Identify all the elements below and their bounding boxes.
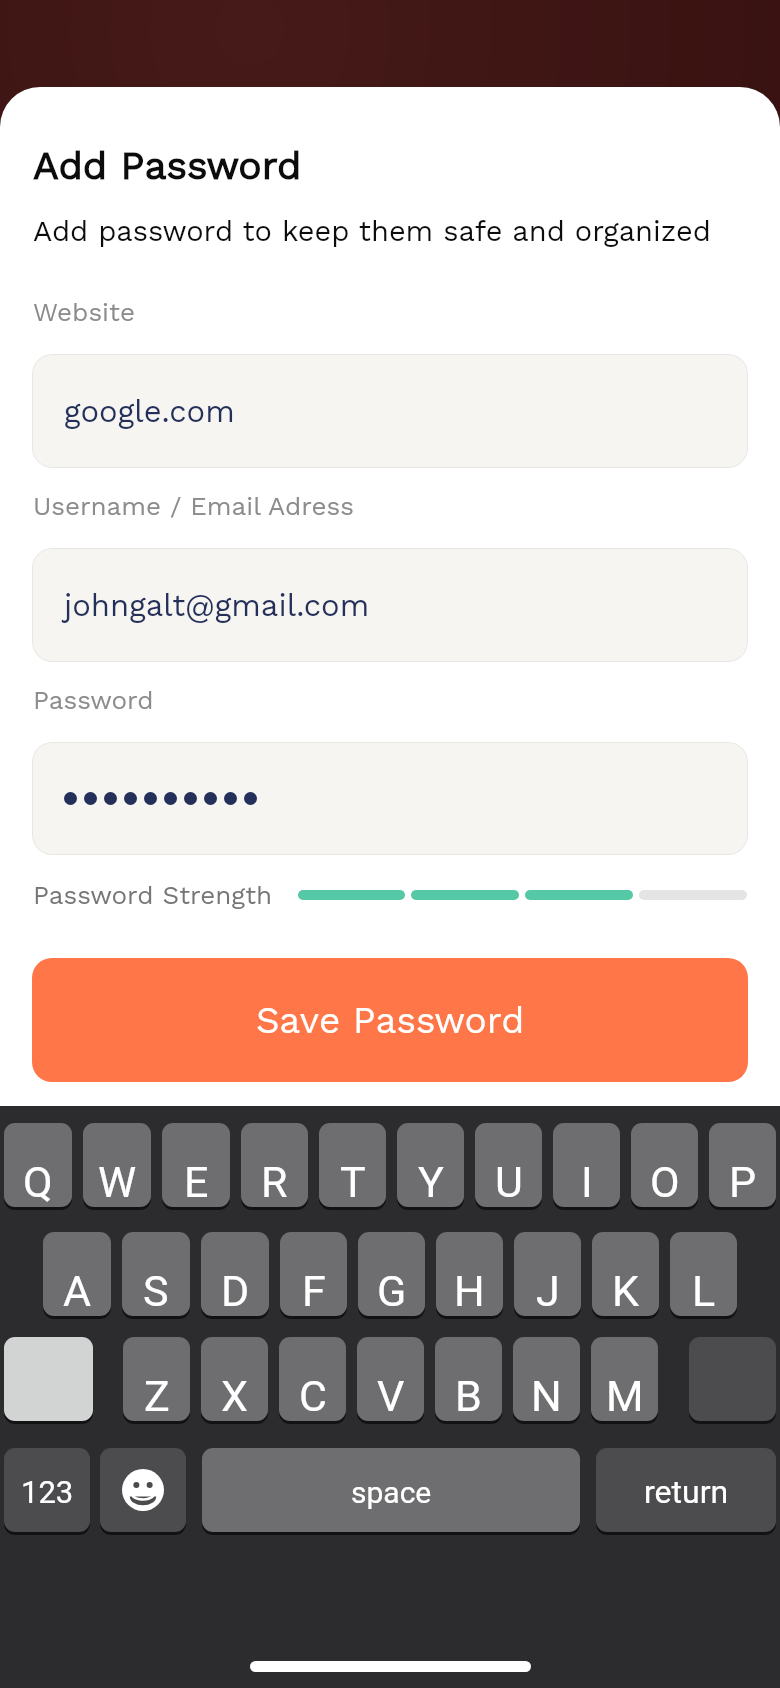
staticText: Save Password bbox=[256, 999, 525, 1042]
button[interactable]: Shift bbox=[4, 1337, 93, 1421]
button[interactable]: R bbox=[241, 1123, 308, 1207]
button[interactable]: X bbox=[201, 1337, 268, 1421]
button[interactable]: L bbox=[670, 1232, 737, 1316]
button[interactable]: U bbox=[475, 1123, 542, 1207]
button[interactable]: johngalt@gmail.com bbox=[32, 548, 748, 662]
button[interactable]: I bbox=[553, 1123, 620, 1207]
staticText: P bbox=[729, 1157, 757, 1207]
staticText: google.com bbox=[64, 393, 235, 429]
staticText: Password bbox=[33, 685, 154, 715]
button[interactable]: E bbox=[162, 1123, 230, 1207]
staticText: Password Strength bbox=[33, 880, 273, 910]
button[interactable]: M bbox=[591, 1337, 658, 1421]
staticText: L bbox=[692, 1266, 716, 1316]
staticText: 123 bbox=[21, 1474, 74, 1510]
button[interactable]: H bbox=[436, 1232, 503, 1316]
button[interactable]: A bbox=[43, 1232, 111, 1316]
button[interactable] bbox=[32, 742, 748, 855]
staticText: Username / Email Adress bbox=[33, 491, 354, 521]
button[interactable]: Emoji bbox=[100, 1448, 186, 1532]
button[interactable]: V bbox=[357, 1337, 424, 1421]
button[interactable]: google.com bbox=[32, 354, 748, 468]
button[interactable]: Save Password bbox=[32, 958, 748, 1082]
button[interactable]: Backspace bbox=[689, 1337, 776, 1421]
staticText: R bbox=[261, 1157, 288, 1207]
staticText: K bbox=[612, 1266, 639, 1316]
button[interactable]: T bbox=[319, 1123, 386, 1207]
staticText: J bbox=[536, 1266, 560, 1316]
staticText: S bbox=[143, 1266, 169, 1316]
button[interactable]: K bbox=[592, 1232, 659, 1316]
button[interactable]: F bbox=[280, 1232, 347, 1316]
staticText: H bbox=[454, 1266, 485, 1316]
staticText: return bbox=[644, 1473, 729, 1511]
staticText: X bbox=[221, 1371, 248, 1421]
button[interactable]: 123 bbox=[4, 1448, 90, 1532]
staticText: F bbox=[302, 1266, 326, 1316]
staticText: Z bbox=[144, 1371, 170, 1421]
button[interactable]: Z bbox=[123, 1337, 190, 1421]
staticText: Add password to keep them safe and organ… bbox=[33, 214, 711, 248]
staticText: johngalt@gmail.com bbox=[64, 587, 370, 623]
button[interactable]: J bbox=[514, 1232, 581, 1316]
button[interactable]: S bbox=[122, 1232, 190, 1316]
button[interactable]: P bbox=[709, 1123, 776, 1207]
staticText: space bbox=[351, 1475, 432, 1510]
staticText: M bbox=[606, 1371, 644, 1421]
staticText: I bbox=[581, 1157, 593, 1207]
staticText: N bbox=[531, 1371, 562, 1421]
button[interactable]: N bbox=[513, 1337, 580, 1421]
staticText: Q bbox=[23, 1157, 53, 1207]
button[interactable]: W bbox=[83, 1123, 151, 1207]
staticText: Y bbox=[418, 1157, 444, 1207]
button[interactable]: O bbox=[631, 1123, 698, 1207]
staticText: B bbox=[455, 1371, 482, 1421]
button[interactable]: C bbox=[279, 1337, 346, 1421]
staticText: V bbox=[377, 1371, 405, 1421]
button[interactable]: return bbox=[596, 1448, 776, 1532]
staticText: Add Password bbox=[33, 143, 302, 189]
staticText: O bbox=[650, 1157, 680, 1207]
staticText: E bbox=[184, 1157, 209, 1207]
staticText: Website bbox=[33, 297, 135, 327]
staticText: T bbox=[340, 1157, 366, 1207]
button[interactable]: Q bbox=[4, 1123, 72, 1207]
button[interactable]: D bbox=[201, 1232, 269, 1316]
staticText: A bbox=[63, 1266, 92, 1316]
staticText: G bbox=[377, 1266, 407, 1316]
button[interactable]: space bbox=[202, 1448, 580, 1532]
staticText: W bbox=[98, 1157, 137, 1207]
button[interactable]: G bbox=[358, 1232, 425, 1316]
staticText: D bbox=[221, 1266, 250, 1316]
button[interactable]: Y bbox=[397, 1123, 464, 1207]
button[interactable]: B bbox=[435, 1337, 502, 1421]
staticText: C bbox=[299, 1371, 327, 1421]
staticText: U bbox=[495, 1157, 523, 1207]
